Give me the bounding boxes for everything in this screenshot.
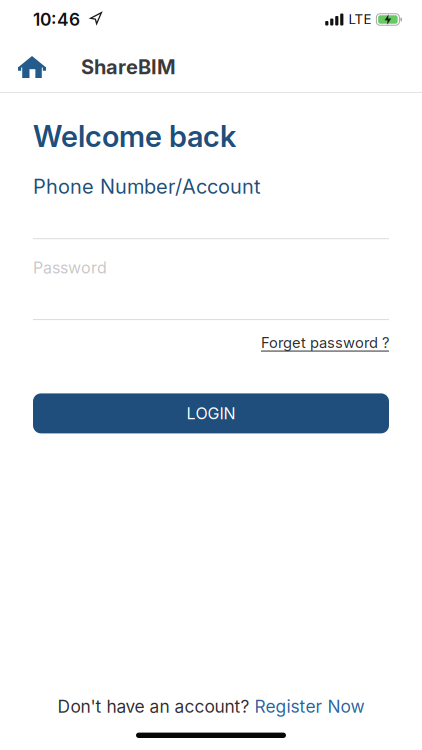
staticText: LTE [348,12,371,27]
staticText: Forget password ? [261,334,389,351]
staticText: Don't have an account? [57,696,254,717]
button[interactable]: LOGIN [33,393,389,433]
staticText: Phone Number/Account [33,175,261,198]
button[interactable]: Forget password ? [261,334,389,351]
button[interactable]: Register Now [254,696,364,717]
staticText: ShareBIM [81,55,176,79]
staticText: Welcome back [33,119,236,154]
button[interactable]: Home [18,56,46,78]
staticText: 10:46 [33,9,80,30]
staticText: Password [33,258,107,277]
staticText: LOGIN [186,404,235,423]
staticText: Register Now [254,696,364,717]
